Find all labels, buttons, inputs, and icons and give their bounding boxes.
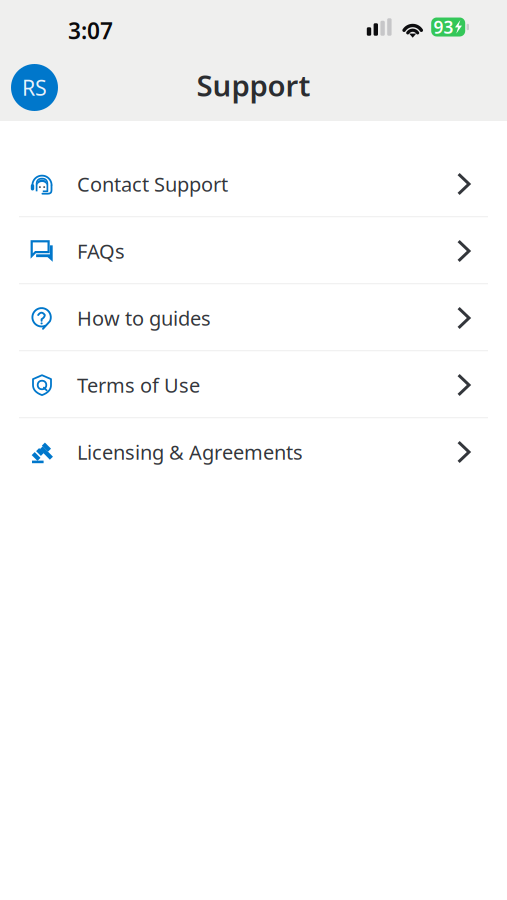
staticText: Licensing & Agreements: [77, 439, 303, 465]
staticText: 93: [433, 15, 453, 38]
staticText: FAQs: [77, 238, 125, 264]
button[interactable]: Contact Support: [0, 150, 507, 217]
staticText: How to guides: [77, 305, 211, 331]
button[interactable]: Licensing & Agreements: [0, 418, 507, 485]
staticText: 3:07: [68, 15, 113, 45]
staticText: Terms of Use: [77, 372, 200, 398]
button[interactable]: Terms of Use: [0, 351, 507, 418]
staticText: Support: [196, 65, 310, 104]
button[interactable]: Profile: [11, 64, 58, 111]
button[interactable]: FAQs: [0, 217, 507, 284]
staticText: Contact Support: [77, 171, 228, 197]
staticText: RS: [22, 73, 47, 102]
button[interactable]: How to guides: [0, 284, 507, 351]
